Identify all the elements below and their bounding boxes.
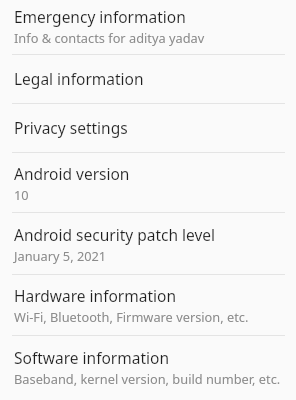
button[interactable]: Android version: [0, 153, 296, 212]
staticText: Android version: [14, 163, 130, 184]
staticText: Emergency information: [14, 6, 186, 27]
staticText: Baseband, kernel version, build number, …: [14, 370, 281, 387]
staticText: Software information: [14, 347, 169, 368]
button[interactable]: Privacy settings: [0, 104, 296, 152]
staticText: 10: [14, 186, 29, 203]
button[interactable]: Android security patch level: [0, 213, 296, 274]
staticText: Android security patch level: [14, 224, 216, 245]
staticText: Legal information: [14, 68, 144, 89]
staticText: Privacy settings: [14, 117, 128, 138]
staticText: January 5, 2021: [14, 247, 107, 264]
button[interactable]: Software information: [0, 336, 296, 400]
button[interactable]: Legal information: [0, 55, 296, 103]
staticText: Info & contacts for aditya yadav: [14, 29, 205, 46]
button[interactable]: Emergency information: [0, 0, 296, 54]
button[interactable]: Hardware information: [0, 275, 296, 335]
staticText: Hardware information: [14, 285, 176, 306]
staticText: Wi-Fi, Bluetooth, Firmware version, etc.: [14, 308, 249, 325]
